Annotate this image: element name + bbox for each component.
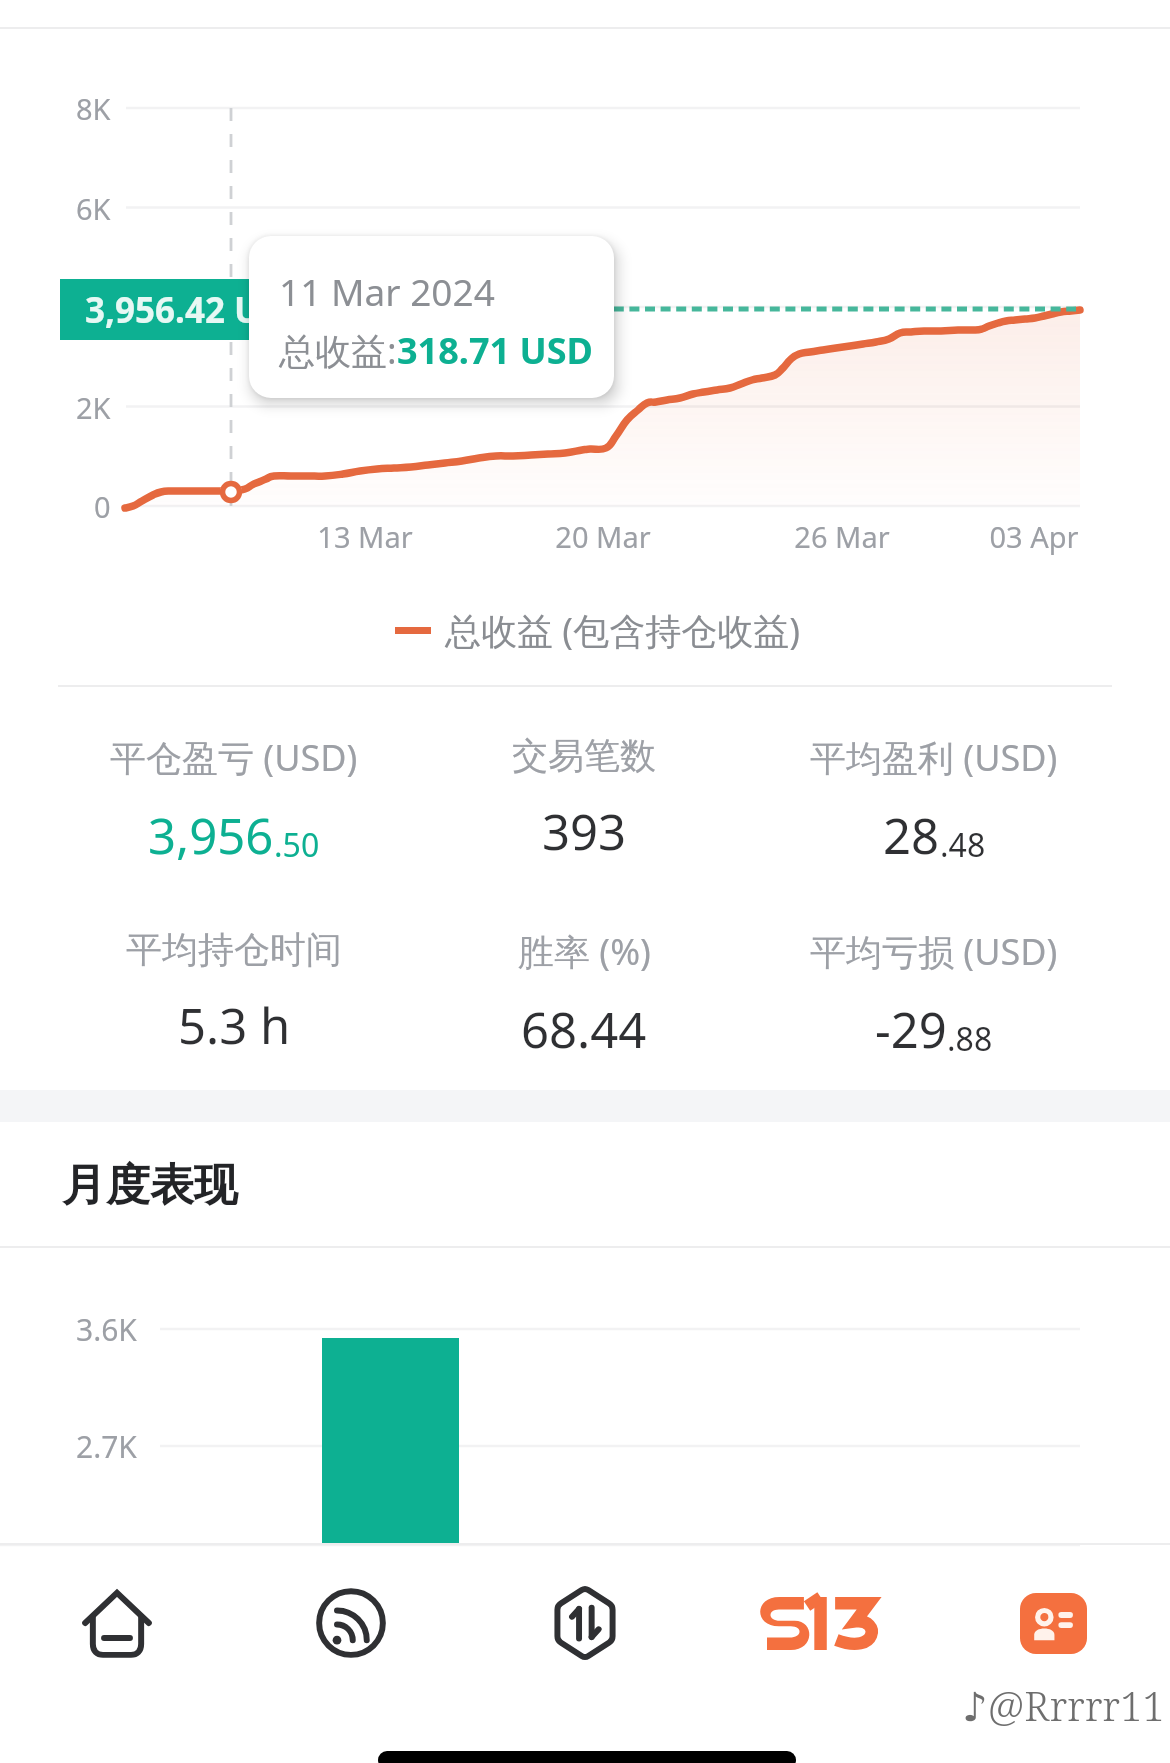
staticText: 平均盈利 (USD) [810, 733, 1058, 782]
staticText: 2K [76, 388, 111, 427]
staticText: 318.71 USD [397, 326, 593, 375]
staticText: 5.3 h [178, 992, 291, 1059]
staticText: .50 [274, 823, 320, 867]
staticText: 6K [76, 189, 111, 228]
staticText: -29 [875, 996, 947, 1063]
staticText: 28 [883, 802, 940, 869]
staticText: 胜率 (%) [518, 927, 651, 976]
button[interactable]: Home [0, 1548, 234, 1698]
staticText: 8K [76, 89, 111, 128]
staticText: 总收益: [279, 326, 397, 375]
staticText: 11 Mar 2024 [279, 266, 495, 316]
staticText: 20 Mar [555, 517, 651, 556]
staticText: 68.44 [521, 996, 647, 1063]
staticText: 13 Mar [317, 517, 413, 556]
staticText: 3,956.42 USD [85, 286, 250, 334]
staticText: 3.6K [76, 1309, 137, 1350]
staticText: 平均亏损 (USD) [810, 927, 1058, 976]
staticText: 月度表现 [62, 1158, 238, 1213]
button[interactable]: Signals [234, 1548, 468, 1698]
button[interactable]: Strategies [702, 1548, 936, 1698]
button[interactable]: Trade [468, 1548, 702, 1698]
staticText: .48 [940, 823, 986, 867]
staticText: 3,956 [148, 802, 274, 869]
staticText: 平仓盈亏 (USD) [110, 733, 358, 782]
staticText: 0 [94, 487, 111, 526]
staticText: 平均持仓时间 [126, 927, 342, 972]
staticText: ♪@Rrrrr11 [962, 1678, 1165, 1732]
staticText: 2.7K [76, 1426, 137, 1467]
staticText: 总收益 (包含持仓收益) [445, 606, 800, 655]
staticText: .88 [947, 1017, 993, 1061]
staticText: 26 Mar [794, 517, 890, 556]
staticText: 393 [542, 798, 627, 865]
staticText: 交易笔数 [512, 733, 656, 778]
staticText: 03 Apr [989, 517, 1079, 556]
button[interactable]: Profile [936, 1548, 1170, 1698]
